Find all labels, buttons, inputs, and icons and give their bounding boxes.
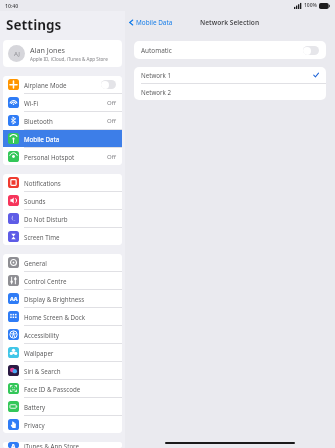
staticText: Wallpaper [24,349,116,357]
staticText: Control Centre [24,277,116,285]
staticText: Bluetooth [24,117,107,125]
button[interactable]: Privacy [3,416,122,433]
button[interactable]: Toggle Airplane Mode [101,80,116,89]
staticText: Sounds [24,197,116,205]
button[interactable]: AJ [3,40,122,67]
staticText: Do Not Disturb [24,215,116,223]
button[interactable]: Sounds [3,192,122,209]
staticText: Home Screen & Dock [24,313,116,321]
button[interactable]: Battery [3,398,122,415]
button[interactable]: Network 2 [134,84,326,100]
button[interactable]: Wi-Fi [3,94,122,111]
button[interactable]: Automatic [134,41,326,59]
staticText: Airplane Mode [24,81,101,89]
button[interactable]: Personal Hotspot [3,148,122,165]
staticText: Settings [6,16,62,34]
staticText: Personal Hotspot [24,153,107,161]
staticText: Screen Time [24,233,116,241]
staticText: 100% [304,2,317,9]
staticText: Network Selection [200,18,260,27]
button[interactable]: Bluetooth [3,112,122,129]
staticText: A [11,442,16,448]
staticText: Mobile Data [24,135,116,143]
staticText: AA [10,295,18,302]
staticText: General [24,259,116,267]
button[interactable]: Home Screen & Dock [3,308,122,325]
button[interactable]: Network 1 [134,67,326,83]
button[interactable]: AA [3,290,122,307]
staticText: Off [107,99,116,107]
staticText: Notifications [24,179,116,187]
staticText: Network 2 [141,88,319,96]
staticText: Network 1 [141,71,313,79]
button[interactable]: Control Centre [3,272,122,289]
staticText: Battery [24,403,116,411]
staticText: Siri & Search [24,367,116,375]
staticText: Apple ID, iCloud, iTunes & App Store [30,56,108,62]
staticText: Accessibility [24,331,116,339]
staticText: Mobile Data [136,18,173,27]
button[interactable]: Wallpaper [3,344,122,361]
staticText: Wi-Fi [24,99,107,107]
button[interactable]: Face ID & Passcode [3,380,122,397]
staticText: Display & Brightness [24,295,116,303]
button[interactable]: Siri & Search [3,362,122,379]
staticText: Face ID & Passcode [24,385,116,393]
button[interactable]: Mobile Data [125,16,177,29]
staticText: Alan Jones [30,45,66,55]
button[interactable]: General [3,254,122,271]
staticText: AJ [14,50,20,58]
staticText: Off [107,117,116,125]
button[interactable]: Screen Time [3,228,122,245]
staticText: Privacy [24,421,116,429]
button[interactable]: Mobile Data [3,130,122,147]
button[interactable]: A [3,442,122,448]
staticText: iTunes & App Store [24,442,116,448]
staticText: Off [107,153,116,161]
button[interactable]: Accessibility [3,326,122,343]
button[interactable]: Notifications [3,174,122,191]
button[interactable]: Do Not Disturb [3,210,122,227]
staticText: Automatic [141,46,303,55]
staticText: 10:40 [5,2,19,9]
button[interactable]: Airplane Mode [3,76,122,93]
button[interactable]: Automatic network selection toggle [303,46,319,55]
